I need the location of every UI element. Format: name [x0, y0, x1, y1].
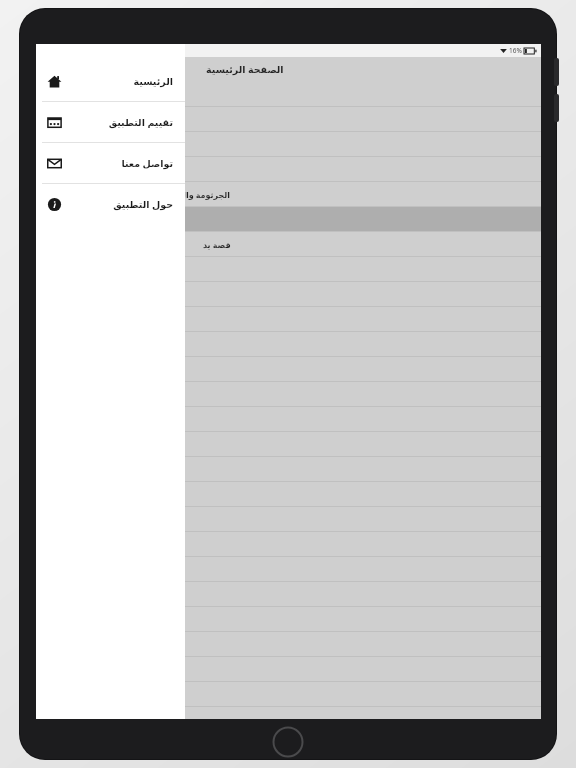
button[interactable]: [36, 707, 541, 719]
button[interactable]: [36, 557, 541, 581]
button[interactable]: [36, 257, 541, 281]
button[interactable]: [36, 132, 541, 156]
button[interactable]: الجرثومة وال: [36, 182, 541, 206]
button[interactable]: الرئيسية: [36, 61, 185, 101]
staticText: حول التطبيق: [113, 198, 173, 211]
button[interactable]: [36, 157, 541, 181]
staticText: الجرثومة وال: [179, 189, 231, 200]
button[interactable]: [36, 607, 541, 631]
button[interactable]: [36, 507, 541, 531]
button[interactable]: [36, 82, 541, 106]
button[interactable]: [36, 657, 541, 681]
button[interactable]: تواصل معنا: [36, 143, 185, 183]
staticText: الصفحة الرئيسية: [206, 63, 284, 76]
button[interactable]: [36, 332, 541, 356]
button[interactable]: [36, 307, 541, 331]
button[interactable]: حول التطبيق: [36, 184, 185, 224]
button[interactable]: [36, 357, 541, 381]
button[interactable]: [36, 682, 541, 706]
button[interactable]: تقييم التطبيق: [36, 102, 185, 142]
button[interactable]: [36, 107, 541, 131]
staticText: تقييم التطبيق: [108, 116, 173, 129]
staticText: تواصل معنا: [121, 157, 173, 170]
button[interactable]: Home: [272, 726, 304, 758]
button[interactable]: [36, 207, 541, 231]
button[interactable]: [36, 407, 541, 431]
staticText: 16%: [509, 46, 522, 55]
staticText: قصة يد: [203, 239, 231, 250]
button[interactable]: [36, 632, 541, 656]
button[interactable]: [36, 382, 541, 406]
button[interactable]: [36, 482, 541, 506]
staticText: الرئيسية: [133, 76, 173, 87]
button[interactable]: قصة يد: [36, 232, 541, 256]
button[interactable]: [36, 432, 541, 456]
button[interactable]: [36, 282, 541, 306]
button[interactable]: [36, 457, 541, 481]
button[interactable]: [36, 582, 541, 606]
button[interactable]: [36, 532, 541, 556]
